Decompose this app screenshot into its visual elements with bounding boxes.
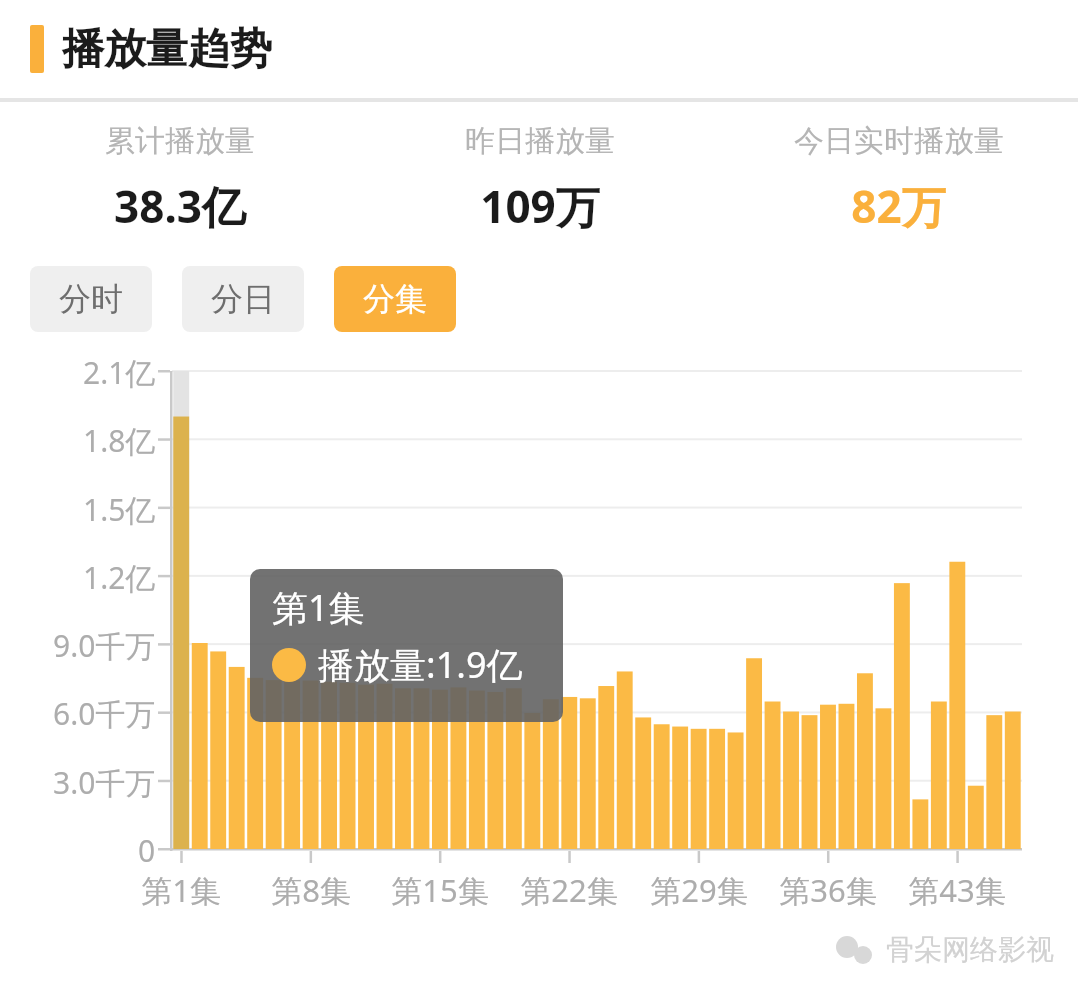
staticText: 6.0千万 xyxy=(53,693,156,734)
staticText: 9.0千万 xyxy=(53,625,156,666)
staticText: 播放量趋势 xyxy=(62,23,272,76)
button[interactable]: 分集 xyxy=(334,266,456,332)
staticText: 第29集 xyxy=(650,869,748,911)
button[interactable]: 第1集 xyxy=(250,569,563,722)
staticText: 第8集 xyxy=(271,869,351,911)
other: WeChat official account xyxy=(834,932,1054,967)
staticText: 第36集 xyxy=(779,869,877,911)
staticText: 38.3亿 xyxy=(114,176,246,236)
staticText: 第43集 xyxy=(908,869,1006,911)
staticText: 第15集 xyxy=(391,869,489,911)
button[interactable]: 分日 xyxy=(182,266,304,332)
staticText: 昨日播放量 xyxy=(465,122,615,160)
staticText: 1.5亿 xyxy=(83,489,156,530)
staticText: 分时 xyxy=(59,279,123,319)
staticText: 累计播放量 xyxy=(105,122,255,160)
staticText: 109万 xyxy=(480,176,600,236)
staticText: 1.8亿 xyxy=(83,420,156,461)
button[interactable]: 今日实时播放量 xyxy=(719,102,1078,254)
button[interactable]: 分时 xyxy=(30,266,152,332)
staticText: 分日 xyxy=(211,279,275,319)
staticText: 2.1亿 xyxy=(83,352,156,393)
staticText: 第1集 xyxy=(141,869,221,911)
staticText: 播放量:1.9亿 xyxy=(318,640,523,689)
staticText: 第1集 xyxy=(272,583,365,632)
staticText: 骨朵网络影视 xyxy=(886,932,1054,967)
staticText: 82万 xyxy=(851,176,946,236)
button[interactable]: 昨日播放量 xyxy=(360,102,719,254)
staticText: 今日实时播放量 xyxy=(794,122,1004,160)
staticText: 3.0千万 xyxy=(53,762,156,803)
staticText: 第22集 xyxy=(520,869,618,911)
staticText: 1.2亿 xyxy=(83,557,156,598)
staticText: 0 xyxy=(138,830,156,871)
button[interactable]: 累计播放量 xyxy=(0,102,360,254)
staticText: 分集 xyxy=(363,279,427,319)
